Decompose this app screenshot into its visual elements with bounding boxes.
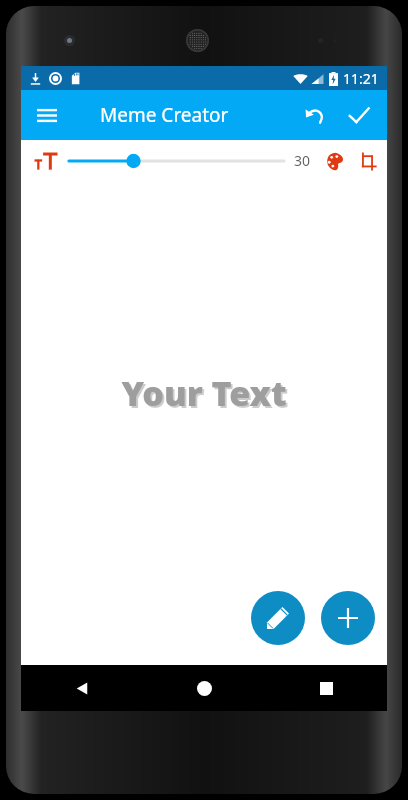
button[interactable]: Crop image	[351, 145, 383, 177]
button[interactable]: Text size	[29, 144, 63, 178]
button[interactable]: Your Text	[121, 370, 287, 416]
button[interactable]: Edit text	[251, 591, 305, 645]
staticText: 30	[294, 151, 311, 170]
staticText: Meme Creator	[100, 102, 229, 128]
button[interactable]: Add text	[321, 591, 375, 645]
button[interactable]: Recent apps	[265, 665, 387, 711]
staticText: Your Text	[121, 370, 287, 416]
button[interactable]: Open navigation menu	[25, 93, 69, 137]
button[interactable]: Text size slider	[69, 144, 284, 178]
staticText: Your Text	[123, 372, 289, 418]
button[interactable]: Save meme	[337, 93, 381, 137]
button[interactable]: Home	[143, 665, 265, 711]
button[interactable]: Back	[21, 665, 143, 711]
staticText: 11:21	[343, 69, 379, 88]
button[interactable]: Undo	[293, 93, 337, 137]
button[interactable]: Choose color	[319, 145, 351, 177]
